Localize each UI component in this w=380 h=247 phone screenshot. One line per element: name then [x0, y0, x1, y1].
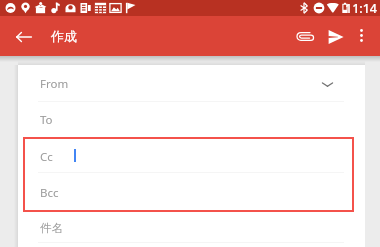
staticText: To: [40, 112, 53, 128]
button[interactable]: Cc: [18, 140, 365, 174]
button[interactable]: Bcc: [18, 176, 365, 210]
button[interactable]: Send: [319, 20, 352, 53]
staticText: 件名: [40, 221, 63, 235]
staticText: Bcc: [40, 185, 59, 201]
staticText: Cc: [40, 149, 53, 165]
button[interactable]: To: [18, 103, 365, 137]
staticText: 作成: [51, 28, 77, 44]
button[interactable]: More options: [347, 21, 376, 50]
staticText: 11:14: [345, 0, 378, 16]
button[interactable]: 件名: [18, 211, 365, 245]
button[interactable]: Attach file: [288, 20, 321, 53]
button[interactable]: From: [18, 67, 365, 101]
button[interactable]: Back: [6, 19, 41, 54]
staticText: From: [40, 76, 69, 92]
